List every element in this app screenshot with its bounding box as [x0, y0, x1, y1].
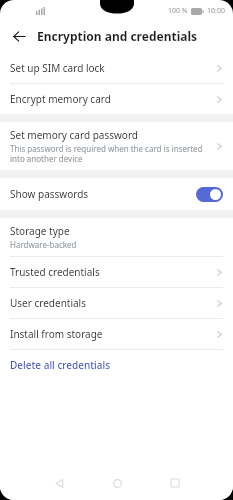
staticText: Hardware-backed: [10, 239, 77, 250]
button[interactable]: Trusted credentials: [0, 257, 233, 287]
staticText: Set memory card password: [10, 128, 138, 142]
staticText: Install from storage: [10, 327, 216, 341]
staticText: Encryption and credentials: [37, 28, 198, 44]
button[interactable]: Storage type: [0, 218, 233, 256]
staticText: Show passwords: [10, 187, 196, 201]
staticText: Encrypt memory card: [10, 92, 216, 106]
staticText: User credentials: [10, 296, 216, 310]
staticText: Delete all credentials: [10, 358, 223, 372]
staticText: This password is required when the card …: [10, 143, 212, 164]
staticText: 100 %: [168, 6, 188, 16]
button[interactable]: Install from storage: [0, 319, 233, 349]
staticText: Set up SIM card lock: [10, 61, 216, 75]
button[interactable]: User credentials: [0, 288, 233, 318]
button[interactable]: Show passwords: [0, 178, 233, 210]
button[interactable]: Recent apps: [158, 466, 192, 500]
staticText: Trusted credentials: [10, 265, 216, 279]
button[interactable]: Set up SIM card lock: [0, 53, 233, 83]
button[interactable]: Delete all credentials: [0, 350, 233, 380]
button[interactable]: Home: [100, 466, 134, 500]
button[interactable]: Encrypt memory card: [0, 84, 233, 114]
button[interactable]: Back: [6, 23, 32, 49]
staticText: 10:00: [207, 6, 225, 16]
button[interactable]: Back: [42, 466, 76, 500]
staticText: Storage type: [10, 224, 70, 238]
button[interactable]: Set memory card password: [0, 122, 233, 170]
